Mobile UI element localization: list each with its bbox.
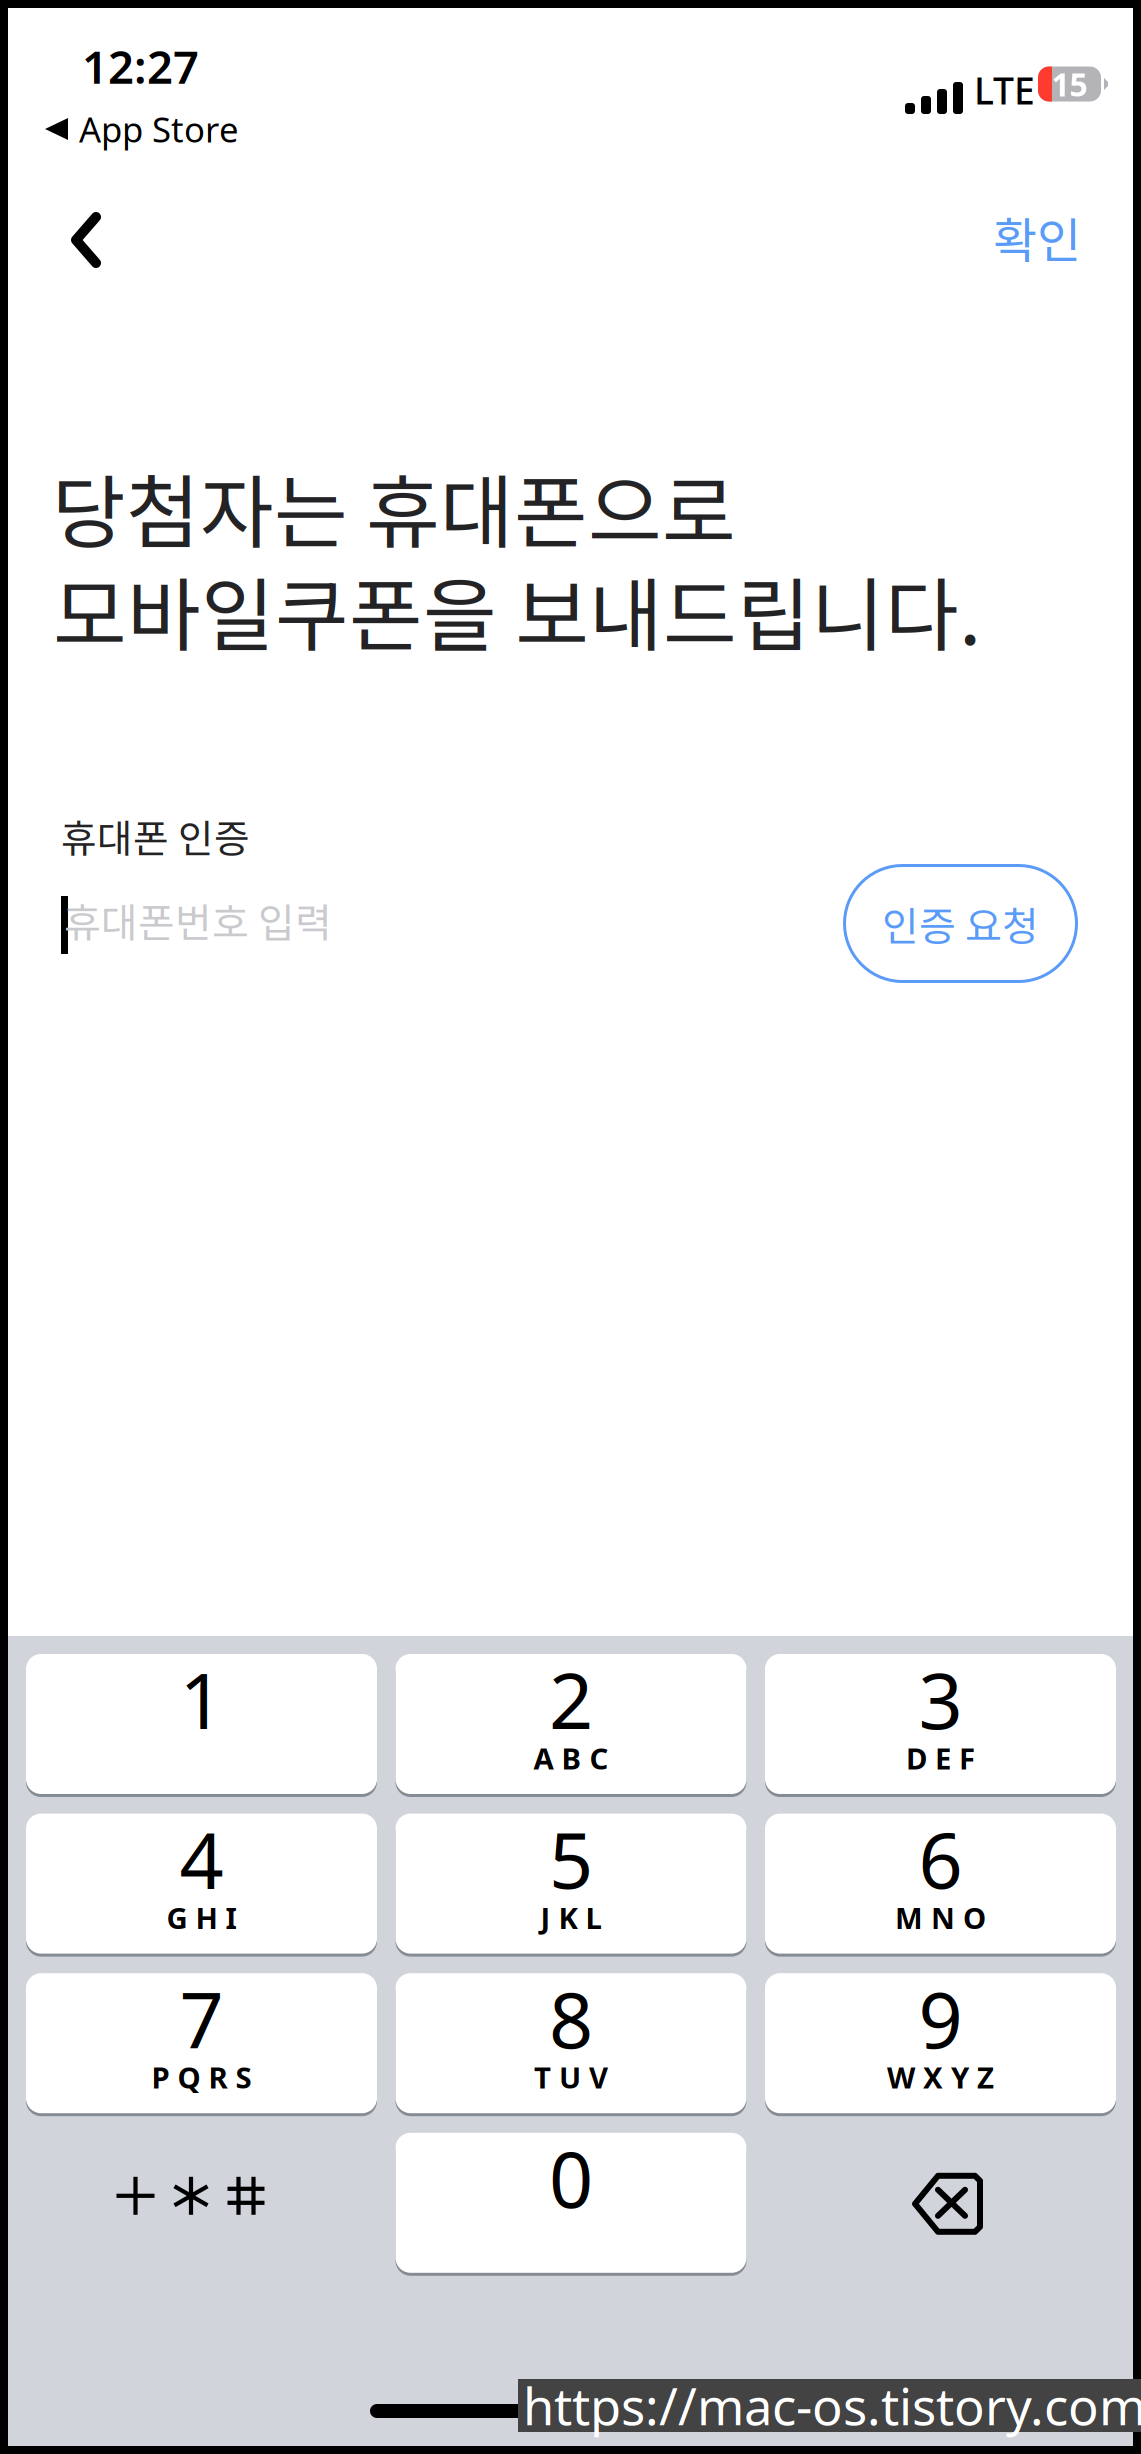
button[interactable]: 6 [765, 1814, 1116, 1957]
staticText: 15 [1051, 63, 1087, 105]
button[interactable]: Delete [765, 2133, 1116, 2273]
button[interactable]: 9 [765, 1973, 1116, 2116]
button[interactable]: 1 [26, 1654, 377, 1797]
staticText: App Store [79, 106, 239, 152]
staticText: P Q R S [151, 2058, 251, 2097]
button[interactable]: 3 [765, 1654, 1116, 1797]
staticText: 모바일쿠폰을 보내드립니다. [53, 552, 981, 668]
staticText: 9 [918, 1967, 962, 2070]
staticText: 12:27 [82, 36, 199, 96]
button[interactable]: 2 [395, 1654, 746, 1797]
button[interactable]: 확인 [886, 193, 1081, 281]
button[interactable]: Back [71, 200, 181, 280]
staticText: A B C [533, 1738, 608, 1777]
button[interactable]: 인증 요청 [843, 864, 1078, 983]
staticText: 당첨자는 휴대폰으로 [52, 449, 736, 565]
staticText: J K L [540, 1898, 601, 1937]
staticText: G H I [166, 1898, 236, 1937]
staticText: 인증 요청 [882, 894, 1039, 952]
staticText: 휴대폰번호 입력 [64, 891, 332, 949]
staticText: 1 [179, 1648, 223, 1750]
staticText: D E F [906, 1738, 975, 1777]
button[interactable]: 8 [395, 1973, 746, 2116]
button[interactable]: 0 [395, 2133, 746, 2276]
staticText: T U V [534, 2058, 608, 2097]
staticText: M N O [895, 1898, 986, 1937]
staticText: 6 [918, 1807, 962, 1910]
staticText: 휴대폰 인증 [61, 808, 250, 864]
staticText: 4 [179, 1807, 223, 1910]
staticText: 확인 [993, 202, 1081, 272]
staticText: W X Y Z [887, 2058, 994, 2097]
staticText: 2 [549, 1648, 593, 1750]
button[interactable]: 7 [26, 1973, 377, 2116]
staticText: 3 [918, 1648, 962, 1750]
staticText: 8 [549, 1967, 593, 2070]
button[interactable]: 5 [395, 1814, 746, 1957]
button[interactable]: 4 [26, 1814, 377, 1957]
button[interactable]: Plus star hash [26, 2133, 377, 2273]
staticText: https://mac-os.tistory.com [523, 2372, 1141, 2439]
staticText: 7 [179, 1967, 223, 2070]
staticText: 0 [549, 2126, 593, 2229]
staticText: 5 [549, 1807, 593, 1910]
staticText: LTE [974, 65, 1035, 115]
